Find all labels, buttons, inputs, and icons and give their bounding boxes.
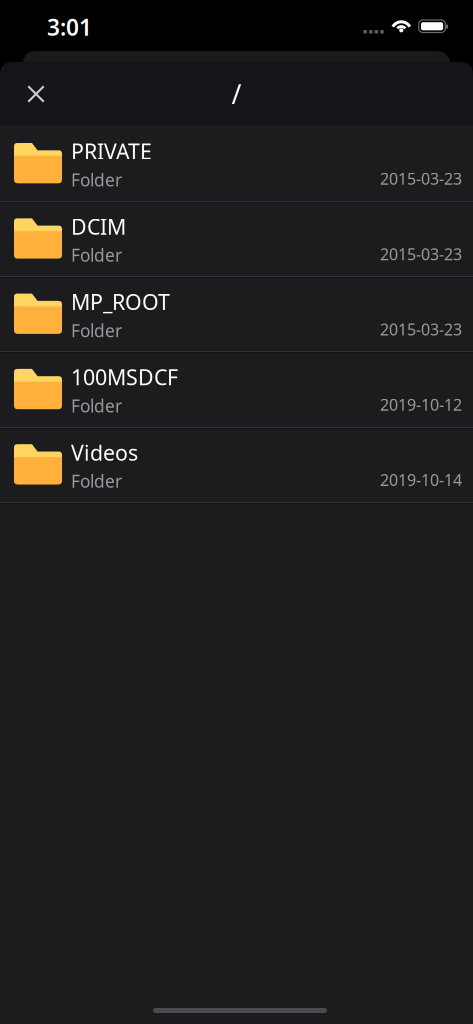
staticText: 2015-03-23 <box>380 319 462 340</box>
button[interactable]: Close <box>14 72 58 116</box>
button[interactable]: DCIM <box>0 201 473 277</box>
staticText: 2019-10-12 <box>380 394 462 415</box>
staticText: 2019-10-14 <box>380 469 462 490</box>
button[interactable]: Videos <box>0 427 473 502</box>
staticText: 2015-03-23 <box>380 243 462 264</box>
staticText: PRIVATE <box>71 137 152 165</box>
button[interactable]: PRIVATE <box>0 126 473 201</box>
button[interactable]: 100MSDCF <box>0 352 473 427</box>
staticText: Folder <box>71 244 122 267</box>
staticText: DCIM <box>71 212 126 241</box>
staticText: Folder <box>71 469 122 492</box>
staticText: Folder <box>71 319 122 342</box>
button[interactable]: MP_ROOT <box>0 277 473 352</box>
staticText: 100MSDCF <box>71 363 178 391</box>
staticText: Videos <box>71 438 138 466</box>
staticText: MP_ROOT <box>71 288 170 316</box>
staticText: 3:01 <box>47 12 92 42</box>
staticText: / <box>231 76 241 112</box>
staticText: 2015-03-23 <box>380 168 462 189</box>
staticText: Folder <box>71 168 122 191</box>
staticText: Folder <box>71 394 122 417</box>
